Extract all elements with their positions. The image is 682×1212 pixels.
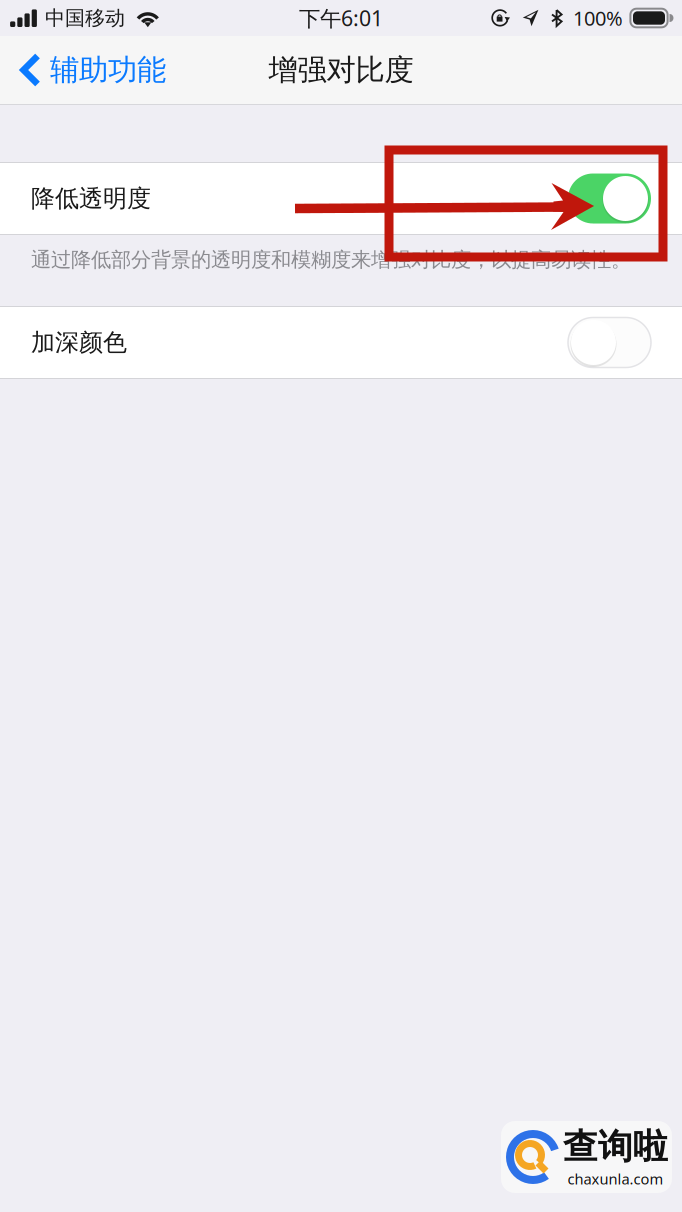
button[interactable]: 降低透明度: [0, 163, 682, 234]
staticText: 增强对比度: [268, 52, 413, 88]
staticText: chaxunla.com: [567, 1169, 663, 1189]
staticText: 加深颜色: [31, 328, 127, 357]
staticText: 辅助功能: [50, 52, 166, 88]
staticText: 中国移动: [45, 6, 125, 30]
staticText: 降低透明度: [31, 184, 151, 213]
staticText: 下午6:01: [299, 4, 383, 32]
staticText: 查询啦: [563, 1125, 668, 1168]
button[interactable]: 辅助功能: [0, 35, 180, 104]
staticText: 通过降低部分背景的透明度和模糊度来增强对比度，以提高易读性。: [31, 247, 631, 272]
button[interactable]: 加深颜色: [0, 307, 682, 378]
staticText: 100%: [573, 5, 623, 31]
